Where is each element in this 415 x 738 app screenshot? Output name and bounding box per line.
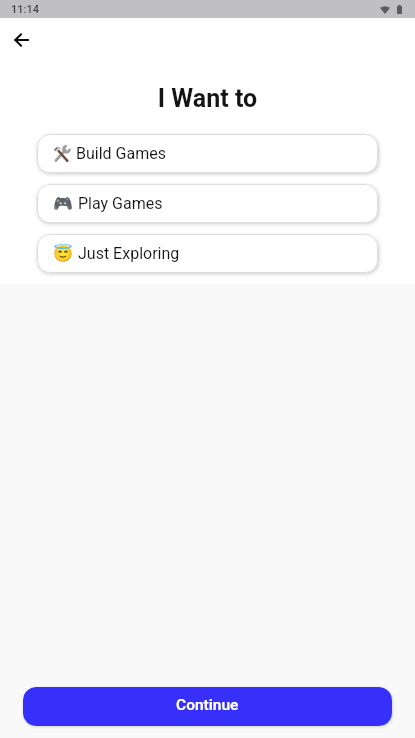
staticText: Build Games xyxy=(76,144,166,163)
staticText: I Want to xyxy=(0,84,415,113)
staticText: Play Games xyxy=(78,194,163,213)
button[interactable]: 🎮 xyxy=(37,184,378,223)
button[interactable]: 😇 xyxy=(37,234,378,273)
button[interactable]: Continue xyxy=(23,687,392,726)
staticText: 😇 xyxy=(53,244,73,263)
button[interactable]: Back xyxy=(9,27,35,53)
staticText: Just Exploring xyxy=(78,244,180,263)
button[interactable]: Build Games xyxy=(37,134,378,173)
staticText: 🎮 xyxy=(53,194,73,213)
staticText: 11:14 xyxy=(11,3,39,16)
staticText: Continue xyxy=(176,696,239,714)
